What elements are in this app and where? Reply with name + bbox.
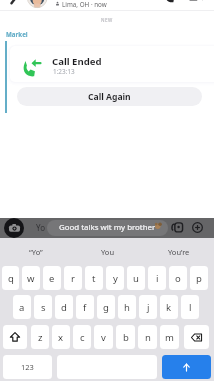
button[interactable]: i (148, 266, 166, 290)
button[interactable]: l (181, 295, 199, 319)
button[interactable]: “Yo” (0, 238, 72, 266)
button[interactable]: t (85, 266, 103, 290)
staticText: You (101, 247, 115, 257)
button[interactable]: g (97, 295, 115, 319)
button[interactable]: r (64, 266, 82, 290)
button[interactable]: Call Again (17, 87, 202, 106)
button[interactable]: More options (192, 222, 203, 233)
staticText: g (103, 301, 109, 314)
button[interactable]: c (73, 325, 91, 349)
button[interactable]: y (106, 266, 124, 290)
button[interactable]: d (55, 295, 73, 319)
staticText: f (83, 301, 87, 314)
button[interactable]: You’re (143, 238, 214, 266)
staticText: k (166, 301, 172, 314)
staticText: x (58, 331, 64, 344)
staticText: n (145, 331, 151, 344)
button[interactable]: z (31, 325, 49, 349)
staticText: Markel (6, 30, 28, 38)
staticText: u (133, 272, 139, 285)
staticText: i (156, 272, 159, 285)
button[interactable]: s (34, 295, 52, 319)
button[interactable]: e (43, 266, 61, 290)
button[interactable]: p (190, 266, 208, 290)
staticText: v (101, 331, 106, 344)
staticText: 1:23:13 (53, 67, 75, 76)
staticText: Good talks wit my brother (59, 222, 156, 233)
button[interactable]: v (94, 325, 113, 349)
button[interactable]: x (52, 325, 70, 349)
button[interactable]: k (160, 295, 178, 319)
staticText: c (80, 331, 85, 344)
button[interactable]: n (138, 325, 157, 349)
button[interactable]: q (2, 266, 19, 290)
button[interactable]: Video call (188, 0, 203, 3)
staticText: Yo (36, 222, 45, 233)
staticText: j (147, 301, 150, 314)
button[interactable]: Profile (0, 0, 214, 11)
staticText: w (27, 272, 35, 285)
staticText: Call Again (88, 91, 131, 103)
button[interactable]: 123 (3, 355, 52, 379)
staticText: “Yo” (29, 247, 43, 257)
button[interactable]: u (127, 266, 145, 290)
button[interactable]: h (118, 295, 136, 319)
button[interactable]: w (22, 266, 40, 290)
button[interactable]: f (76, 295, 94, 319)
button[interactable]: j (139, 295, 157, 319)
staticText: t (92, 272, 96, 285)
button[interactable]: b (116, 325, 135, 349)
staticText: o (175, 272, 181, 285)
staticText: a (19, 301, 25, 314)
staticText: e (49, 272, 55, 285)
staticText: z (38, 331, 43, 344)
button[interactable]: o (169, 266, 187, 290)
button[interactable]: m (160, 325, 179, 349)
button[interactable]: Send (162, 355, 211, 379)
staticText: Lima, OH · now (62, 0, 107, 9)
staticText: You’re (168, 247, 190, 257)
staticText: 123 (21, 362, 34, 372)
staticText: h (124, 301, 130, 314)
button[interactable]: You (72, 238, 143, 266)
button[interactable]: Stickers (172, 222, 183, 233)
staticText: s (41, 301, 46, 314)
staticText: p (196, 272, 202, 285)
staticText: b (123, 331, 129, 344)
button[interactable]: Shift (3, 325, 27, 349)
staticText: l (189, 301, 192, 314)
staticText: d (61, 301, 67, 314)
button[interactable]: Backspace (184, 325, 209, 349)
staticText: q (8, 272, 14, 285)
staticText: y (113, 272, 118, 285)
button[interactable]: Camera (4, 218, 24, 238)
staticText: r (71, 272, 75, 285)
staticText: Call Ended (52, 55, 102, 68)
button[interactable]: Call (164, 0, 177, 3)
staticText: m (165, 331, 174, 344)
staticText: NEW (101, 17, 113, 23)
button[interactable]: Good talks wit my brother (47, 220, 168, 236)
button[interactable]: a (13, 295, 31, 319)
